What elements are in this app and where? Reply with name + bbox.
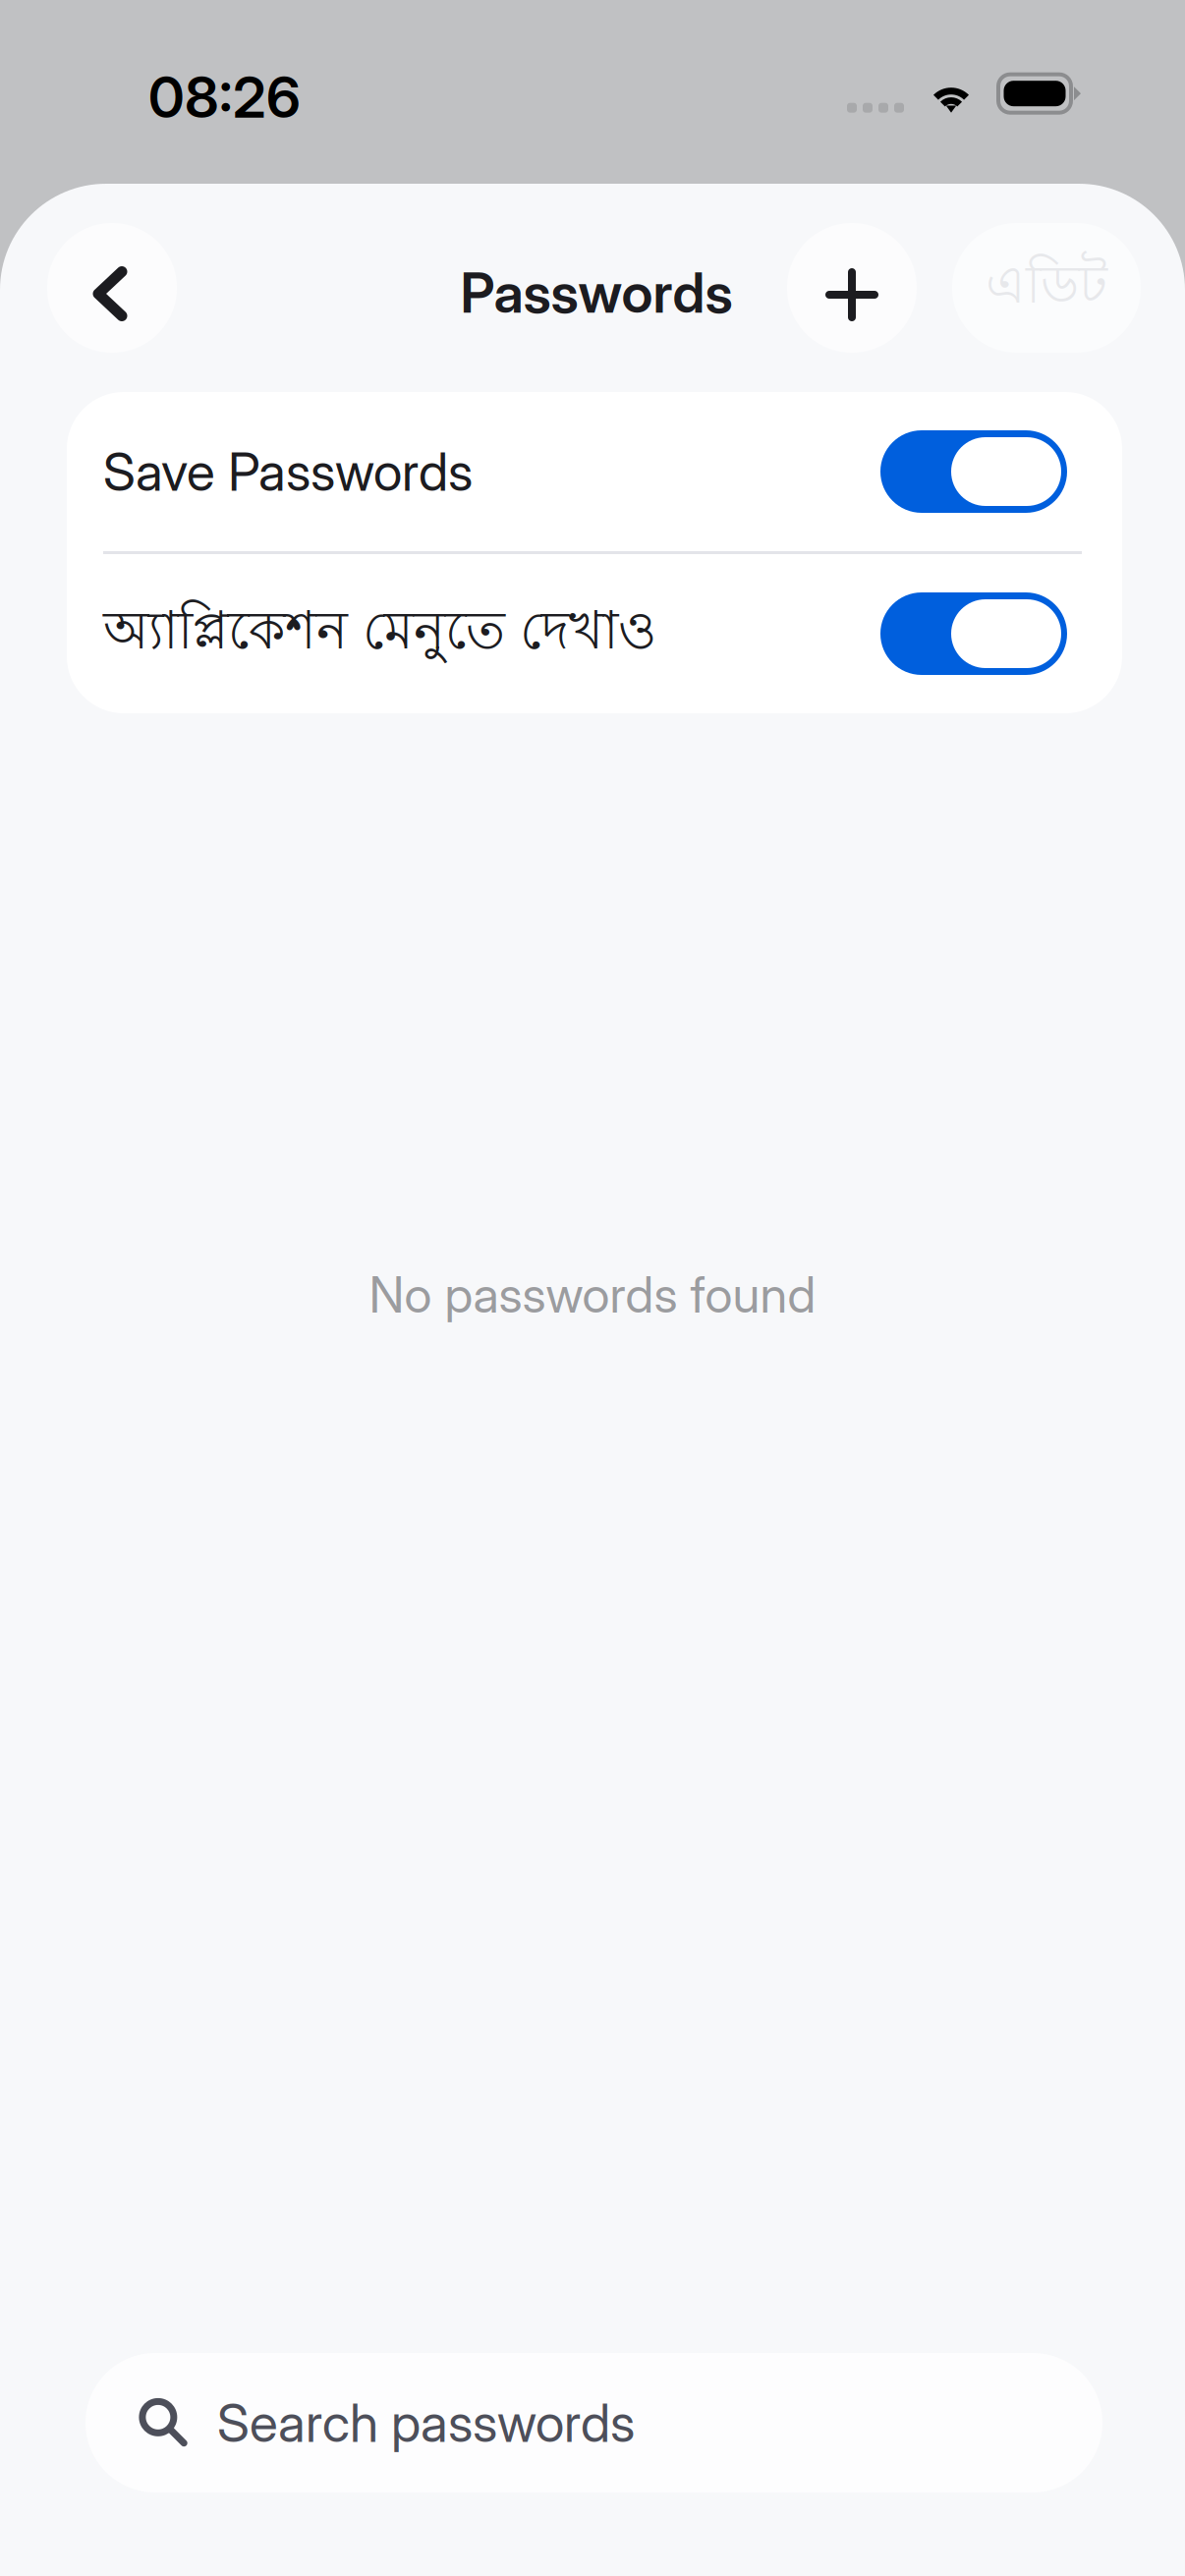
button[interactable]: Back bbox=[47, 223, 177, 353]
staticText: Search passwords bbox=[217, 2391, 635, 2454]
button[interactable]: অ্যাপ্লিকেশন মেনুতে দেখাও bbox=[67, 554, 1122, 713]
staticText: No passwords found bbox=[369, 1264, 816, 1325]
staticText: অ্যাপ্লিকেশন মেনুতে দেখাও bbox=[103, 597, 656, 671]
button[interactable]: এডিট bbox=[952, 223, 1141, 353]
staticText: Passwords bbox=[460, 259, 733, 326]
staticText: 08:26 bbox=[148, 63, 301, 131]
button[interactable]: Save Passwords bbox=[67, 392, 1122, 551]
button[interactable]: Add password bbox=[787, 223, 917, 353]
staticText: Save Passwords bbox=[103, 440, 473, 503]
staticText: এডিট bbox=[986, 251, 1107, 325]
button[interactable]: Search passwords bbox=[85, 2353, 1102, 2492]
